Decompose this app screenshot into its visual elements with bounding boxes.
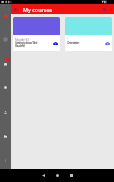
button[interactable]: Messages (0, 59, 11, 70)
button[interactable]: Menu (12, 6, 19, 13)
button[interactable]: Home (0, 10, 11, 21)
staticText: (Student) (15, 44, 25, 48)
button[interactable]: Moodle HQ (13, 17, 60, 51)
button[interactable]: Notifications (0, 82, 11, 93)
button[interactable]: Search (101, 6, 108, 13)
button[interactable]: Dashboard (0, 34, 11, 45)
button[interactable]: Profile (0, 107, 11, 118)
button[interactable]: More (0, 155, 11, 166)
staticText: Moodle HQ (15, 38, 29, 42)
button[interactable]: Recent apps (64, 169, 78, 182)
button[interactable]: More options (108, 6, 114, 12)
button[interactable]: Home (50, 169, 64, 182)
staticText: Getting to know Tiled (15, 41, 37, 45)
staticText: Orientation (67, 41, 80, 45)
button[interactable]: Orientation (65, 17, 112, 51)
button[interactable]: Files (0, 131, 11, 142)
button[interactable]: Back (36, 169, 50, 182)
staticText: My courses (23, 6, 53, 13)
